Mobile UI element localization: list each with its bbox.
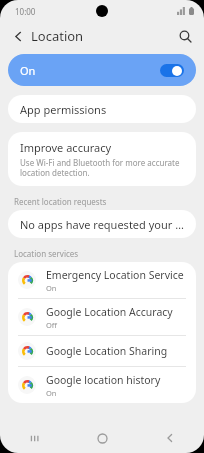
staticText: Location services bbox=[14, 248, 79, 259]
button[interactable]: Emergency Location Service bbox=[8, 262, 196, 298]
button[interactable]: Google Location Accuracy bbox=[8, 299, 196, 335]
button[interactable]: Search bbox=[174, 25, 196, 47]
button[interactable]: On bbox=[8, 54, 196, 86]
button[interactable]: Improve accuracy bbox=[8, 132, 196, 186]
staticText: Location bbox=[31, 27, 84, 45]
button[interactable]: Back bbox=[136, 423, 204, 453]
staticText: No apps have requested your location.. bbox=[20, 217, 184, 232]
staticText: 10:00 bbox=[15, 6, 36, 17]
staticText: Emergency Location Service bbox=[46, 268, 184, 282]
button[interactable]: Home bbox=[68, 423, 136, 453]
staticText: On bbox=[46, 283, 57, 293]
button[interactable]: Google location history bbox=[8, 367, 196, 403]
staticText: On bbox=[20, 63, 36, 78]
button[interactable]: Back bbox=[8, 26, 28, 46]
staticText: Recent location requests bbox=[14, 196, 107, 207]
staticText: Google Location Accuracy bbox=[46, 305, 173, 319]
staticText: On bbox=[46, 388, 57, 398]
staticText: Google Location Sharing bbox=[46, 344, 168, 358]
button[interactable]: Google Location Sharing bbox=[8, 336, 196, 366]
staticText: App permissions bbox=[20, 102, 107, 117]
button[interactable]: Recent apps bbox=[0, 423, 68, 453]
staticText: Google location history bbox=[46, 373, 161, 387]
staticText: Use Wi-Fi and Bluetooth for more accurat… bbox=[20, 157, 184, 178]
staticText: Improve accuracy bbox=[20, 140, 112, 155]
button[interactable]: App permissions bbox=[8, 95, 196, 123]
staticText: Off bbox=[46, 320, 58, 330]
button[interactable]: No apps have requested your location.. bbox=[8, 210, 196, 238]
